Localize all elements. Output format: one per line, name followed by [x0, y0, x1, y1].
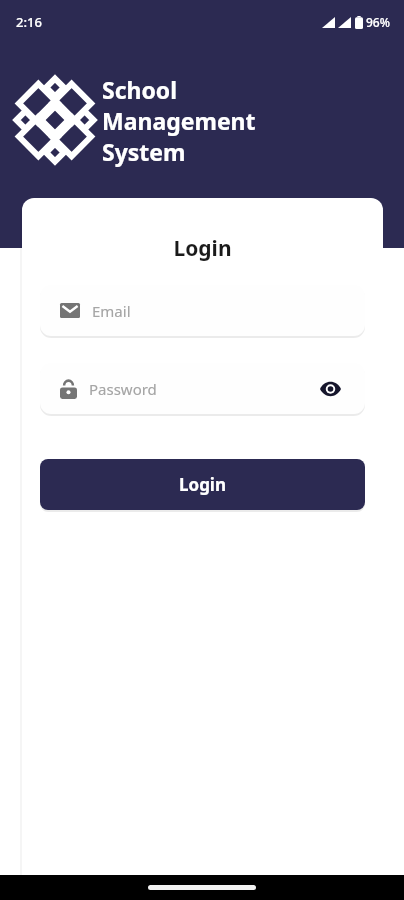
staticText: 96%	[366, 14, 390, 30]
button[interactable]: Email	[40, 285, 365, 336]
staticText: Email	[92, 301, 131, 321]
staticText: System	[102, 136, 186, 167]
button[interactable]: Login	[40, 459, 365, 510]
button[interactable]: Password	[40, 363, 365, 414]
button[interactable]: Show password	[315, 374, 345, 404]
staticText: Login	[179, 473, 227, 496]
staticText: Password	[89, 379, 157, 399]
staticText: School	[102, 74, 178, 105]
staticText: Management	[102, 105, 256, 136]
staticText: 2:16	[16, 13, 42, 31]
staticText: Login	[173, 234, 232, 263]
